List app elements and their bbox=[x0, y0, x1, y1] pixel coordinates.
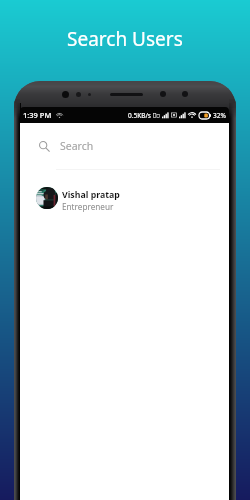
button[interactable]: Vishal pratap bbox=[20, 170, 229, 226]
staticText: Search bbox=[60, 139, 94, 153]
staticText: Vishal pratap bbox=[62, 189, 120, 201]
staticText: Search Users bbox=[67, 26, 183, 52]
staticText: Entrepreneur bbox=[62, 201, 114, 212]
staticText: 1:39 PM bbox=[23, 110, 52, 120]
staticText: 0.5KB/s bbox=[128, 111, 151, 120]
button[interactable]: Search bbox=[20, 123, 229, 169]
staticText: 32% bbox=[213, 111, 226, 120]
